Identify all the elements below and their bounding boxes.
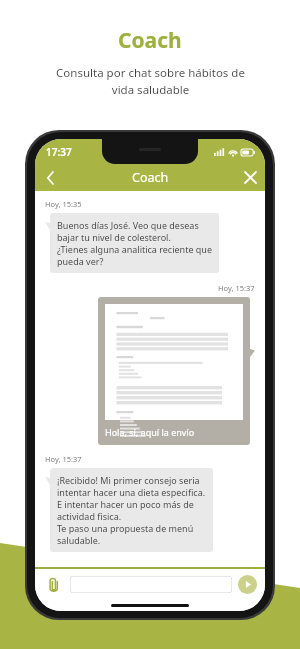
button[interactable]: Back <box>35 164 65 191</box>
button[interactable]: Close <box>235 164 265 191</box>
staticText: Coach <box>118 26 182 55</box>
button[interactable] <box>70 576 232 593</box>
staticText: 17:37 <box>46 145 72 159</box>
staticText: Hola, sí, aquí la envío <box>105 426 195 438</box>
button[interactable]: Buenos días José. Veo que deseas bajar t… <box>50 213 219 273</box>
button[interactable]: Send <box>238 575 257 594</box>
button[interactable]: Hola, sí, aquí la envío <box>98 297 250 445</box>
staticText: Consulta por chat sobre hábitos de vida … <box>56 65 245 97</box>
staticText: Hoy, 15:37 <box>218 283 255 293</box>
staticText: ¡Recibido! Mi primer consejo seria inten… <box>57 474 206 546</box>
staticText: Hoy, 15:37 <box>45 454 82 464</box>
staticText: Hoy, 15:35 <box>45 199 82 209</box>
staticText: Coach <box>132 169 169 186</box>
staticText: Buenos días José. Veo que deseas bajar t… <box>57 219 212 267</box>
button[interactable]: ¡Recibido! Mi primer consejo seria inten… <box>50 468 213 552</box>
button[interactable]: Attach file <box>43 573 65 595</box>
